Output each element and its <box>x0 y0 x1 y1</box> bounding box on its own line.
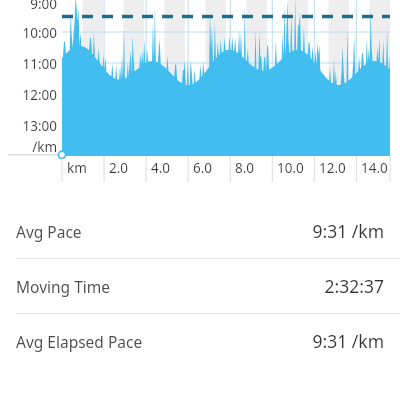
staticText: 10:00 <box>0 24 57 42</box>
button[interactable]: Moving Time <box>0 259 400 313</box>
staticText: 12.0 <box>319 159 346 177</box>
staticText: 14.0 <box>361 159 388 177</box>
staticText: 2:32:37 <box>324 274 384 298</box>
other: Pace over distance chart <box>0 0 400 156</box>
staticText: 9:00 <box>0 0 57 13</box>
staticText: 6.0 <box>193 159 213 177</box>
staticText: km <box>67 159 87 177</box>
staticText: 11:00 <box>0 55 57 73</box>
staticText: Avg Elapsed Pace <box>16 331 143 352</box>
staticText: Avg Pace <box>16 221 82 242</box>
button[interactable]: Avg Elapsed Pace <box>0 314 400 368</box>
staticText: 10.0 <box>277 159 304 177</box>
staticText: 9:31 /km <box>312 329 384 353</box>
staticText: 8.0 <box>235 159 255 177</box>
staticText: 9:31 /km <box>312 219 384 243</box>
staticText: Moving Time <box>16 276 110 297</box>
staticText: 12:00 <box>0 86 57 104</box>
staticText: 2.0 <box>109 159 129 177</box>
button[interactable]: Avg Pace <box>0 204 400 258</box>
staticText: 13:00 <box>0 117 57 135</box>
staticText: /km <box>0 138 57 156</box>
staticText: 4.0 <box>151 159 171 177</box>
